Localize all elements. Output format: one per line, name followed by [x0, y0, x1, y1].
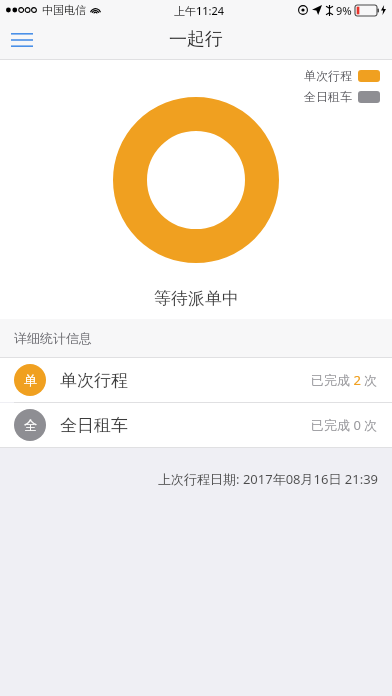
staticText: 一起行	[169, 28, 223, 51]
button[interactable]: 单	[0, 358, 392, 402]
button[interactable]: 全	[0, 403, 392, 447]
staticText: 单次行程	[60, 370, 128, 391]
staticText: 全日租车	[60, 415, 128, 436]
staticText: 全	[24, 417, 37, 433]
staticText: 已完成 0 次	[311, 416, 378, 434]
button[interactable]: Menu	[0, 20, 44, 59]
staticText: 已完成 2 次	[311, 371, 378, 389]
staticText: 中国电信	[42, 3, 86, 17]
staticText: 单次行程	[304, 68, 352, 83]
staticText: 详细统计信息	[14, 330, 92, 346]
staticText: 9%	[336, 3, 352, 18]
staticText: 全日租车	[304, 89, 352, 104]
staticText: 上午11:24	[174, 3, 225, 18]
staticText: 单	[24, 372, 37, 388]
staticText: 等待派单中	[154, 288, 239, 309]
staticText: 上次行程日期: 2017年08月16日 21:39	[0, 470, 378, 488]
